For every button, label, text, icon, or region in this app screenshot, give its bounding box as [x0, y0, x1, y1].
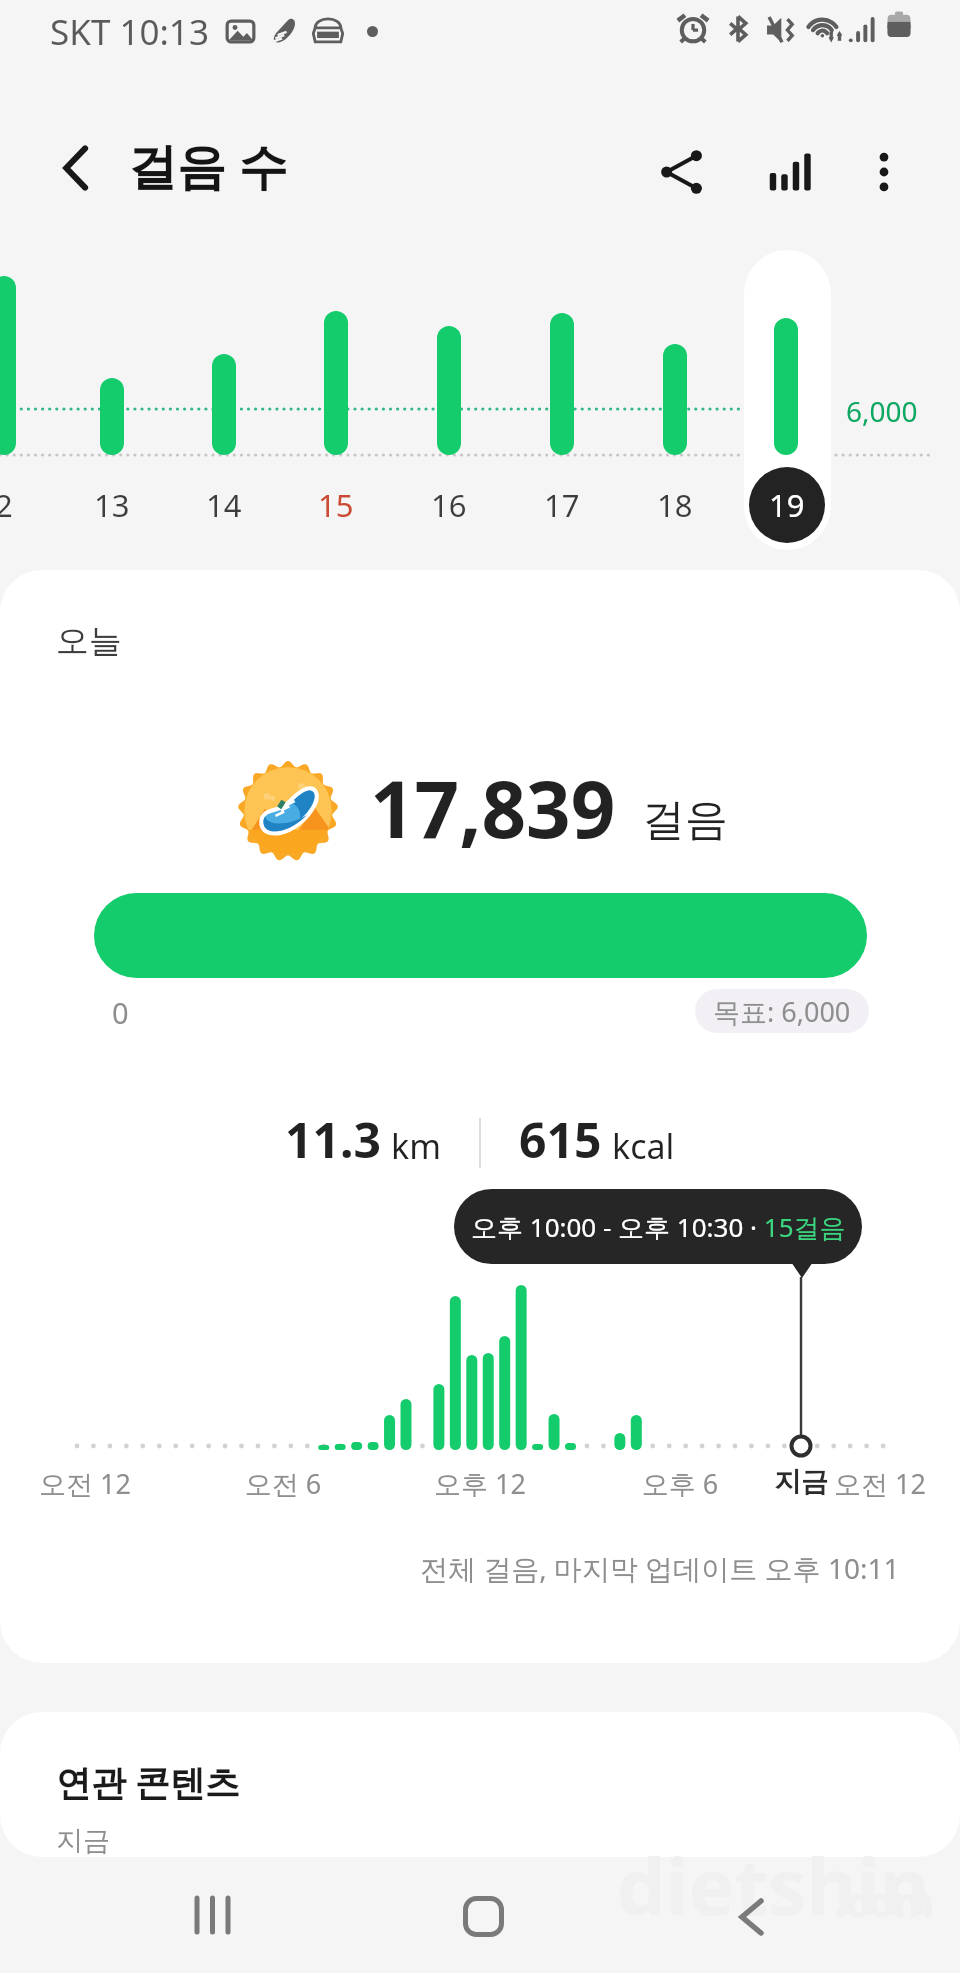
button[interactable]: 15	[286, 481, 386, 529]
staticText: 지금	[56, 1824, 110, 1857]
staticText: 지금	[721, 1465, 881, 1499]
staticText: 14	[206, 484, 242, 526]
staticText: 오후 6	[600, 1465, 760, 1502]
staticText: 18	[657, 484, 693, 526]
button[interactable]: 19	[737, 481, 837, 529]
button[interactable]: Chart	[746, 128, 834, 216]
staticText: 오전 12	[800, 1465, 960, 1502]
button[interactable]: 14	[174, 481, 274, 529]
staticText: 13	[94, 484, 130, 526]
button[interactable]: 16	[399, 481, 499, 529]
staticText: 오늘	[56, 620, 122, 662]
staticText: km	[391, 1123, 441, 1169]
button[interactable]: 2	[0, 481, 54, 529]
button[interactable]: Back	[33, 126, 117, 210]
staticText: 19	[769, 484, 805, 526]
staticText: 오후 10:00 - 오후 10:30 · 15걸음	[471, 1209, 846, 1245]
staticText: 오후 12	[400, 1465, 560, 1502]
staticText: 0	[112, 993, 129, 1032]
button[interactable]: 18	[625, 481, 725, 529]
button[interactable]: Share	[638, 128, 726, 216]
button[interactable]: 13	[62, 481, 162, 529]
staticText: 오전 12	[5, 1465, 165, 1502]
button[interactable]: More options	[840, 128, 928, 216]
button[interactable]: 오늘	[0, 570, 960, 1663]
staticText: 6,000	[846, 392, 918, 430]
staticText: 16	[431, 484, 467, 526]
staticText: 오전 6	[203, 1465, 363, 1502]
staticText: 2	[0, 484, 13, 526]
staticText: 연관 콘텐츠	[56, 1758, 241, 1806]
staticText: 목표: 6,000	[713, 993, 851, 1030]
button[interactable]: Home	[422, 1855, 542, 1973]
staticText: dietshin	[617, 1833, 930, 1938]
button[interactable]: 연관 콘텐츠	[0, 1712, 960, 1857]
staticText: 전체 걸음, 마지막 업데이트 오후 10:11	[420, 1549, 900, 1587]
staticText: 걸음 수	[128, 132, 288, 199]
staticText: 15	[318, 484, 354, 526]
staticText: 17,839	[370, 755, 616, 861]
staticText: 17	[544, 484, 580, 526]
staticText: SKT 10:13	[50, 8, 209, 56]
button[interactable]: Back	[691, 1855, 811, 1973]
staticText: kcal	[612, 1123, 675, 1169]
staticText: 11.3	[285, 1107, 381, 1172]
staticText: 걸음	[642, 793, 728, 847]
button[interactable]: Recent apps	[153, 1855, 273, 1973]
button[interactable]: 17	[512, 481, 612, 529]
staticText: 615	[519, 1107, 602, 1172]
